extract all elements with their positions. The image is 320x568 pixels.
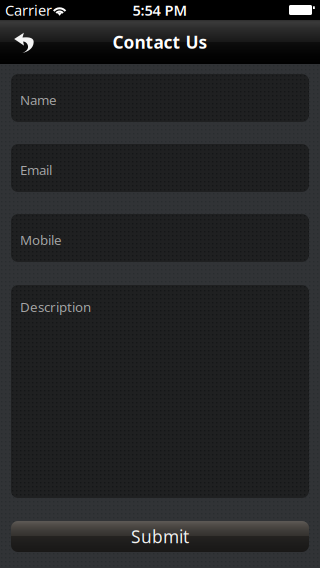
- staticText: Carrier: [5, 0, 52, 20]
- staticText: 5:54 PM: [132, 0, 187, 20]
- button[interactable]: Back: [0, 20, 56, 64]
- staticText: Mobile: [20, 231, 62, 249]
- staticText: Email: [20, 161, 52, 179]
- staticText: Submit: [131, 525, 189, 548]
- staticText: Description: [20, 298, 91, 316]
- staticText: Contact Us: [112, 30, 207, 53]
- staticText: Name: [20, 91, 57, 109]
- button[interactable]: Submit: [11, 521, 309, 552]
